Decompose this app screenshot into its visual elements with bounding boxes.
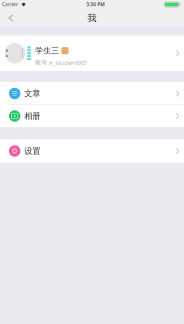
button[interactable]: 文章: [0, 82, 184, 105]
staticText: 学生三: [35, 46, 59, 56]
staticText: 相册: [24, 111, 40, 121]
staticText: 账号:x_student003: [35, 58, 86, 66]
staticText: 文章: [24, 88, 40, 99]
button[interactable]: 学生三: [0, 35, 184, 71]
staticText: 设置: [24, 146, 40, 156]
staticText: 3:36 PM: [86, 1, 104, 8]
button[interactable]: 设置: [0, 139, 184, 163]
staticText: Carrier: [2, 1, 18, 8]
button[interactable]: 相册: [0, 105, 184, 127]
staticText: 我: [87, 12, 96, 24]
button[interactable]: Back: [0, 6, 28, 30]
